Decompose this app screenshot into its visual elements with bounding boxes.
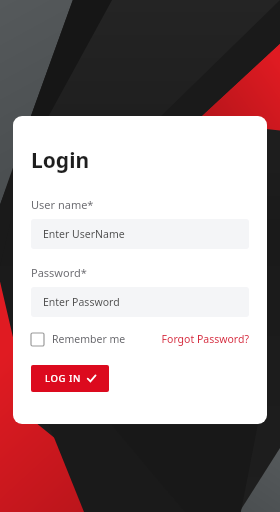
staticText: Enter Password: [43, 295, 120, 309]
staticText: User name*: [31, 197, 94, 212]
staticText: Login: [31, 146, 90, 175]
other: Confirm: [87, 374, 96, 383]
staticText: Forgot Password?: [161, 332, 249, 346]
button[interactable]: Forgot Password?: [161, 332, 249, 346]
button[interactable]: Enter UserName: [31, 219, 249, 249]
button[interactable]: Remember me: [31, 332, 126, 346]
staticText: Remember me: [52, 332, 126, 346]
staticText: LOG IN: [45, 372, 82, 385]
staticText: Password*: [31, 265, 87, 280]
button[interactable]: LOG IN: [31, 365, 109, 392]
button[interactable]: Enter Password: [31, 287, 249, 317]
staticText: Enter UserName: [43, 227, 125, 241]
